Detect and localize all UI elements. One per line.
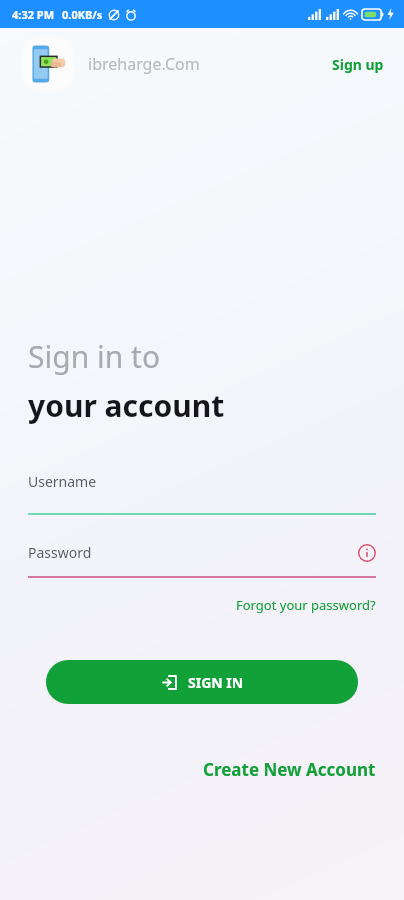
button[interactable]: Forgot your password? xyxy=(236,590,376,620)
staticText: Username xyxy=(28,472,97,491)
button[interactable]: Create New Account xyxy=(175,748,404,791)
other: Password error information xyxy=(358,544,376,562)
staticText: your account xyxy=(28,385,225,426)
button[interactable]: Sign up xyxy=(312,41,404,88)
staticText: 0.0KB/s xyxy=(62,7,103,22)
staticText: 4:32 PM xyxy=(12,7,55,22)
button[interactable]: Username xyxy=(28,472,376,515)
staticText: Create New Account xyxy=(203,758,376,781)
staticText: ibreharge.Com xyxy=(88,53,200,75)
button[interactable]: SIGN IN xyxy=(46,660,358,704)
staticText: Password xyxy=(28,543,358,562)
button[interactable]: Password xyxy=(28,543,376,578)
staticText: Sign in to xyxy=(28,336,161,377)
staticText: SIGN IN xyxy=(188,673,244,692)
button[interactable]: ibreharge.Com xyxy=(22,38,200,90)
staticText: Sign up xyxy=(332,55,384,74)
staticText: Forgot your password? xyxy=(236,596,376,614)
